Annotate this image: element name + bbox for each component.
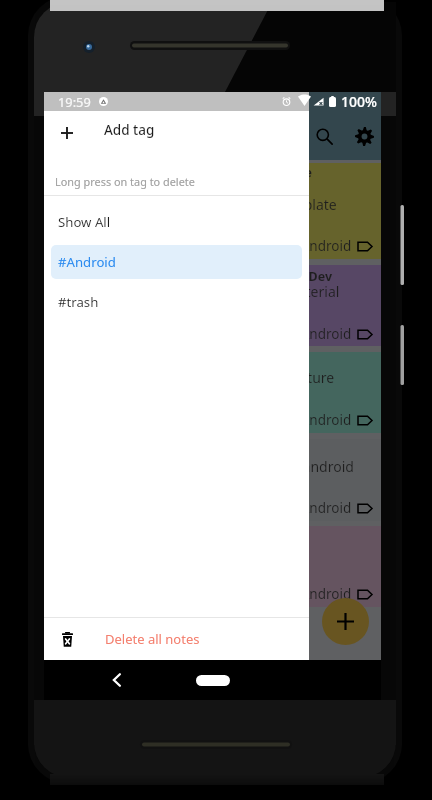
staticText: #Android: [292, 585, 352, 603]
staticText: Delete all notes: [105, 630, 200, 648]
staticText: Architecture: [254, 368, 335, 387]
button[interactable]: Show All: [51, 205, 302, 239]
staticText: Long press on tag to delete: [55, 174, 195, 189]
staticText: #Android: [292, 325, 352, 343]
staticText: 19:59: [58, 93, 91, 110]
staticText: Note template: [242, 195, 337, 214]
button[interactable]: #Android: [44, 526, 381, 607]
button[interactable]: Back: [105, 668, 129, 692]
button[interactable]: Add note: [322, 598, 369, 645]
button[interactable]: #trash: [51, 285, 302, 319]
staticText: #Android: [292, 237, 352, 255]
button[interactable]: Architecture: [44, 352, 381, 433]
button[interactable]: Add tag: [44, 111, 309, 149]
staticText: 100%: [341, 92, 377, 111]
button[interactable]: Hello android: [44, 439, 381, 521]
button[interactable]: Delete all notes: [44, 618, 309, 660]
button[interactable]: Home: [196, 675, 230, 686]
staticText: Note: [281, 164, 312, 181]
staticText: #AndroidDev: [251, 268, 333, 285]
staticText: Material: [285, 282, 340, 301]
button[interactable]: #Android: [51, 245, 302, 279]
button[interactable]: Search: [312, 124, 336, 148]
staticText: #Android: [292, 499, 352, 517]
button[interactable]: Note: [44, 163, 381, 259]
button[interactable]: #AndroidDev: [44, 265, 381, 346]
staticText: Hello android: [265, 457, 354, 476]
staticText: Add tag: [104, 121, 155, 139]
staticText: #trash: [58, 293, 99, 311]
staticText: Show All: [58, 213, 111, 231]
staticText: #Android: [58, 253, 116, 271]
staticText: #Android: [292, 411, 352, 429]
button[interactable]: Settings: [352, 124, 376, 148]
